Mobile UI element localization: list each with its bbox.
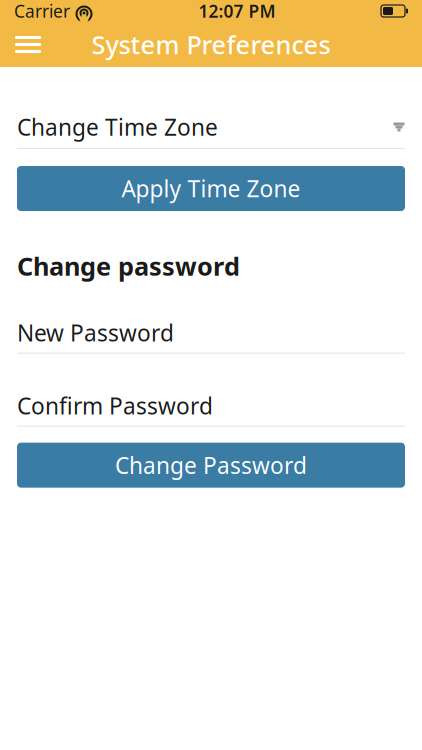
staticText: Change Password	[115, 450, 307, 480]
button[interactable]: Change Time Zone	[17, 112, 405, 149]
staticText: Carrier	[14, 0, 70, 22]
staticText: Change Time Zone	[17, 112, 218, 142]
staticText: New Password	[17, 318, 174, 348]
staticText: 12:07 PM	[198, 0, 275, 22]
button[interactable]: Menu	[6, 22, 50, 66]
staticText: Apply Time Zone	[121, 173, 300, 203]
button[interactable]: Apply Time Zone	[17, 166, 405, 211]
button[interactable]: Change Password	[17, 443, 405, 488]
staticText: Confirm Password	[17, 391, 213, 421]
staticText: System Preferences	[91, 28, 330, 61]
staticText: Change password	[17, 249, 240, 283]
